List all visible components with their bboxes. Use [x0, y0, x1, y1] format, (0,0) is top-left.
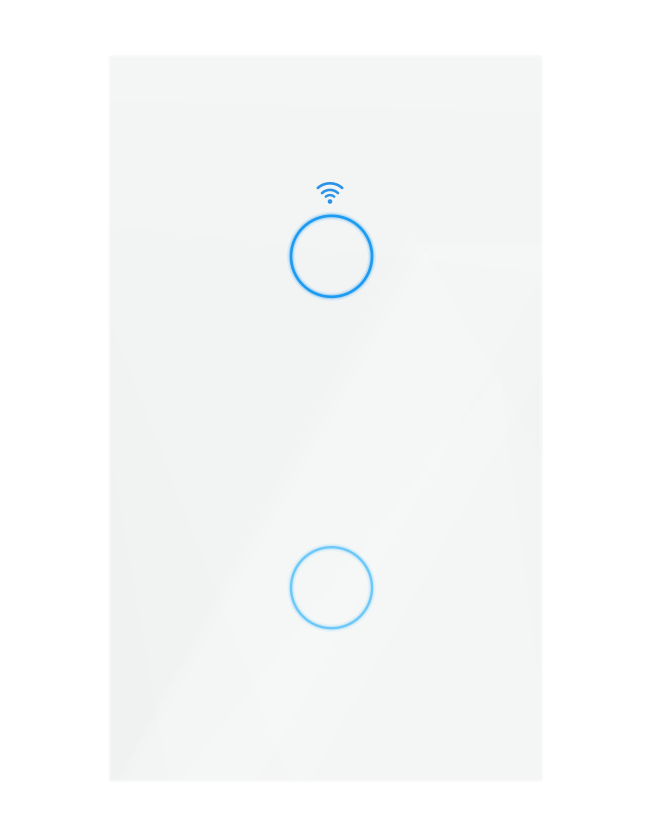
- button[interactable]: Upper switch, on: [284, 209, 379, 304]
- button[interactable]: Lower switch, off: [284, 540, 379, 635]
